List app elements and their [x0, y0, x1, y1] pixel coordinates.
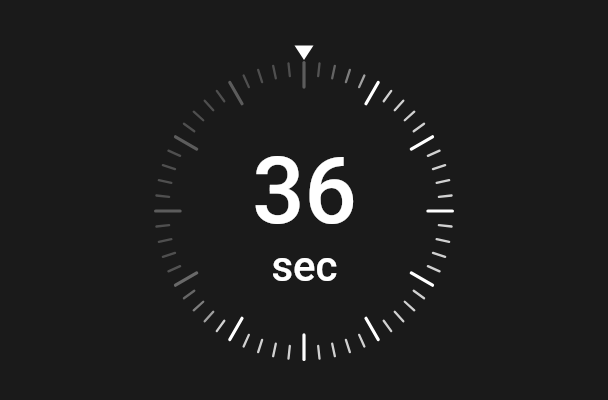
staticText: sec — [271, 242, 338, 291]
button[interactable]: Timer dial, 36 seconds elapsed — [0, 0, 608, 400]
staticText: 36 — [252, 138, 357, 246]
